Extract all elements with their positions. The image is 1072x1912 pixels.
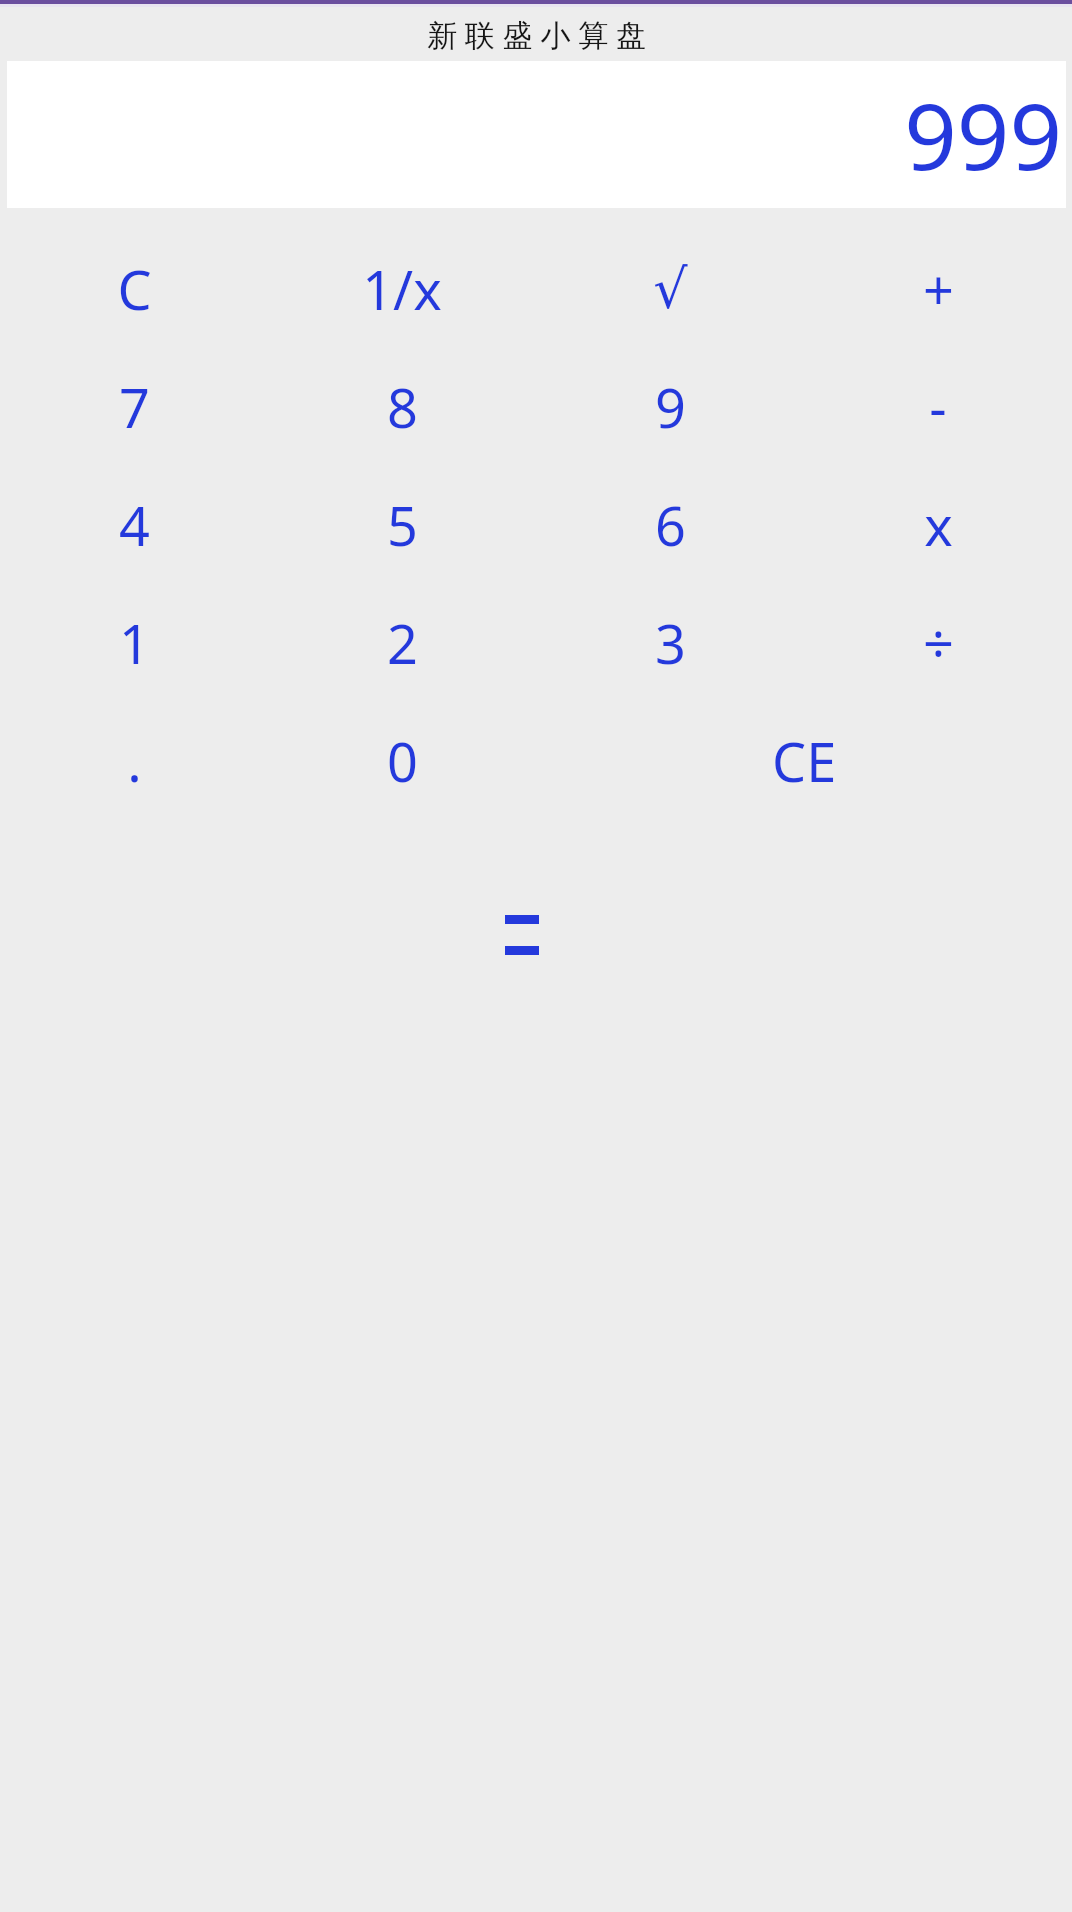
staticText: 1 <box>119 606 150 680</box>
button[interactable]: 1/x <box>268 230 536 348</box>
staticText: 1/x <box>362 252 442 326</box>
button[interactable]: - <box>804 348 1072 466</box>
button[interactable]: 3 <box>536 584 804 702</box>
button[interactable]: √ <box>536 230 804 348</box>
staticText: 0 <box>387 724 418 798</box>
button[interactable]: Equals <box>487 912 557 958</box>
button[interactable]: x <box>804 466 1072 584</box>
staticText: 6 <box>655 488 686 562</box>
button[interactable]: 7 <box>0 348 268 466</box>
button[interactable]: 8 <box>268 348 536 466</box>
button[interactable]: 5 <box>268 466 536 584</box>
staticText: 5 <box>387 488 418 562</box>
staticText: 新 联 盛 小 算 盘 <box>427 14 646 55</box>
staticText: 8 <box>387 370 418 444</box>
button[interactable]: 9 <box>536 348 804 466</box>
button[interactable]: ÷ <box>804 584 1072 702</box>
staticText: √ <box>653 258 688 321</box>
staticText: 7 <box>119 370 150 444</box>
button[interactable]: 0 <box>268 702 536 820</box>
button[interactable]: . <box>0 702 268 820</box>
staticText: ÷ <box>923 606 954 680</box>
staticText: CE <box>772 724 837 798</box>
button[interactable]: 4 <box>0 466 268 584</box>
staticText: . <box>127 724 142 798</box>
button[interactable]: 6 <box>536 466 804 584</box>
button[interactable]: + <box>804 230 1072 348</box>
staticText: 3 <box>655 606 686 680</box>
staticText: - <box>929 370 947 444</box>
staticText: x <box>924 488 953 562</box>
staticText: 9 <box>655 370 686 444</box>
button[interactable]: CE <box>536 702 1072 820</box>
button[interactable]: C <box>0 230 268 348</box>
staticText: 999 <box>904 72 1062 197</box>
button[interactable]: 1 <box>0 584 268 702</box>
staticText: 4 <box>119 488 150 562</box>
staticText: 2 <box>387 606 418 680</box>
staticText: + <box>923 252 954 326</box>
button[interactable]: 2 <box>268 584 536 702</box>
staticText: C <box>117 252 152 326</box>
